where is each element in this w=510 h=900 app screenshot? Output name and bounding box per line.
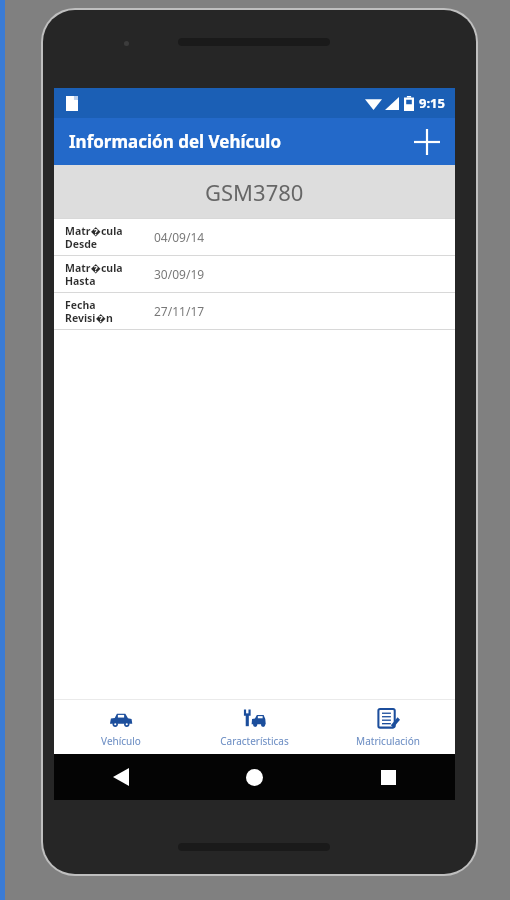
staticText: 30/09/19 [154,266,205,282]
staticText: Matriculación [356,734,420,748]
button[interactable]: Matr�cula Hasta [54,256,455,292]
button[interactable]: Matriculación [321,700,455,754]
staticText: GSM3780 [205,177,304,207]
staticText: 27/11/17 [154,303,205,319]
button[interactable]: Características [187,700,321,754]
button[interactable]: Matr�cula Desde [54,219,455,255]
button[interactable]: Recent apps [321,754,455,800]
button[interactable]: Fecha Revisi�n [54,293,455,329]
staticText: Información del Vehículo [69,130,282,153]
staticText: Vehículo [101,734,141,748]
button[interactable]: Vehículo [54,700,187,754]
staticText: Matr�cula Desde [65,224,147,251]
button[interactable]: Home [187,754,321,800]
button[interactable]: Back [54,754,187,800]
staticText: 9:15 [419,94,445,112]
staticText: Matr�cula Hasta [65,261,147,288]
button[interactable]: Add [407,122,447,162]
staticText: Fecha Revisi�n [65,298,147,325]
staticText: 04/09/14 [154,229,205,245]
staticText: Características [220,734,289,748]
